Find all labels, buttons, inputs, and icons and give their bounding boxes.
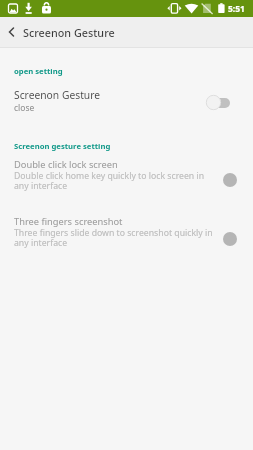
button[interactable] bbox=[206, 95, 230, 110]
button[interactable]: Double click lock screen bbox=[0, 156, 253, 196]
button[interactable]: Three fingers screenshot bbox=[0, 213, 253, 253]
staticText: Double click home key quickly to lock sc… bbox=[14, 170, 205, 191]
staticText: Double click lock screen bbox=[14, 158, 118, 171]
staticText: Three fingers screenshot bbox=[14, 215, 123, 228]
staticText: Three fingers slide down to screenshot q… bbox=[14, 227, 213, 248]
staticText: open setting bbox=[14, 66, 63, 76]
staticText: Screenon gesture setting bbox=[14, 141, 111, 151]
staticText: 5:51 bbox=[228, 3, 245, 15]
staticText: Screenon Gesture bbox=[23, 25, 115, 40]
staticText: Screenon Gesture bbox=[14, 88, 101, 102]
button[interactable] bbox=[2, 22, 22, 42]
button[interactable]: Screenon Gesture bbox=[0, 84, 253, 120]
staticText: close bbox=[14, 102, 35, 114]
